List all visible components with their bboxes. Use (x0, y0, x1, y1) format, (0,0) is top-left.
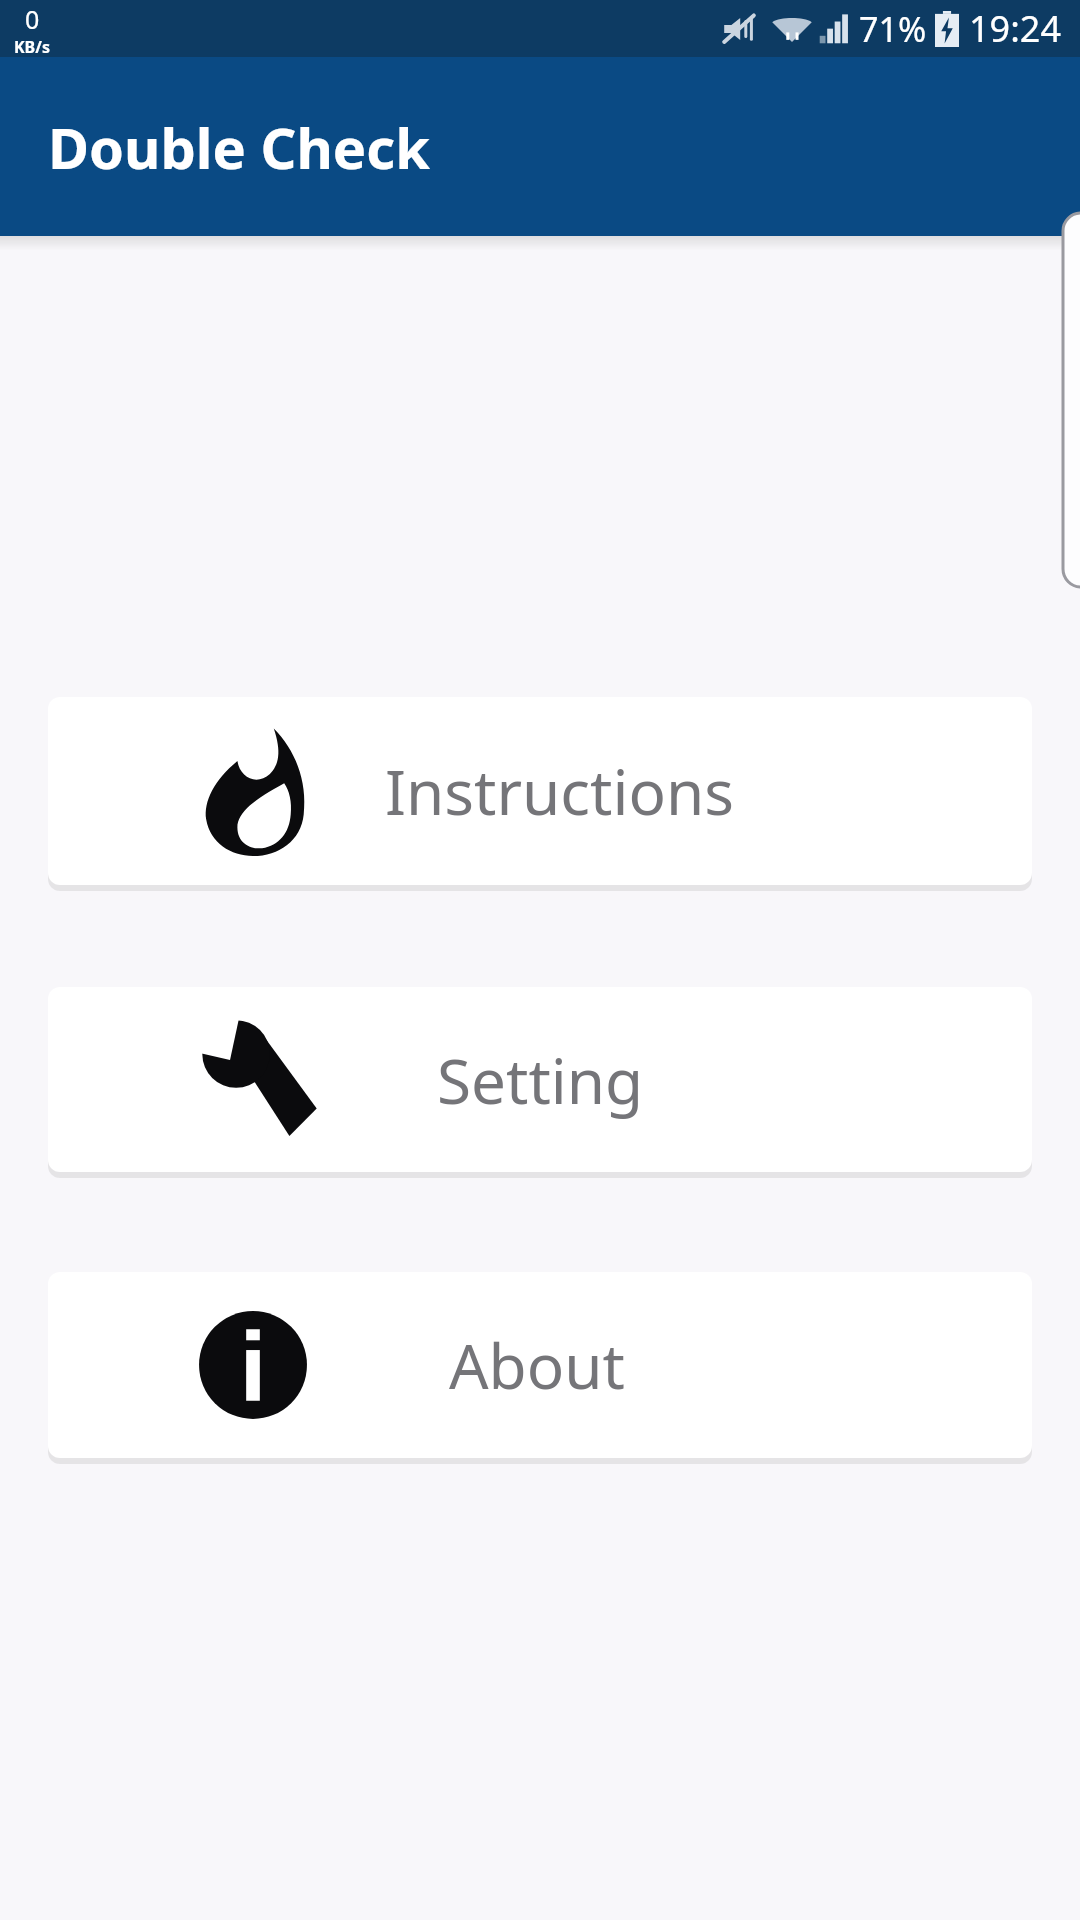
staticText: Instructions (385, 749, 734, 833)
staticText: 71% (859, 6, 927, 52)
staticText: Double Check (48, 109, 430, 185)
button[interactable]: About (48, 1272, 1032, 1458)
staticText: Setting (437, 1038, 644, 1122)
staticText: 0 (25, 2, 40, 36)
button[interactable]: Setting (48, 987, 1032, 1172)
staticText: KB/s (14, 36, 50, 58)
button[interactable]: Instructions (48, 697, 1032, 885)
staticText: 19:24 (969, 4, 1062, 53)
staticText: About (449, 1323, 625, 1407)
